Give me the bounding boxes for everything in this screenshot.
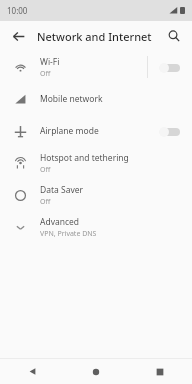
- button[interactable]: Back: [0, 359, 64, 384]
- staticText: Hotspot and tethering: [40, 152, 129, 164]
- button[interactable]: Back: [4, 22, 32, 50]
- staticText: Wi-Fi: [40, 56, 60, 68]
- button[interactable]: Wi-Fi: [0, 51, 192, 83]
- staticText: Off: [40, 197, 51, 207]
- button[interactable]: Home: [64, 359, 128, 384]
- staticText: 10:00: [7, 5, 28, 16]
- button[interactable]: Hotspot and tethering: [0, 147, 192, 179]
- staticText: Data Saver: [40, 184, 84, 196]
- button[interactable]: Wi-Fi toggle: [148, 51, 192, 83]
- staticText: Advanced: [40, 216, 80, 228]
- staticText: Airplane mode: [40, 125, 99, 137]
- button[interactable]: Mobile network: [0, 83, 192, 115]
- button[interactable]: Data Saver: [0, 179, 192, 211]
- button[interactable]: Search: [160, 22, 188, 50]
- button[interactable]: Recent apps: [128, 359, 192, 384]
- button[interactable]: Airplane mode toggle: [148, 115, 192, 147]
- staticText: VPN, Private DNS: [40, 229, 97, 239]
- staticText: Network and Internet: [37, 29, 152, 44]
- staticText: Mobile network: [40, 93, 103, 105]
- staticText: Off: [40, 69, 51, 79]
- button[interactable]: Airplane mode: [0, 115, 192, 147]
- button[interactable]: Advanced: [0, 211, 192, 243]
- staticText: Off: [40, 165, 51, 175]
